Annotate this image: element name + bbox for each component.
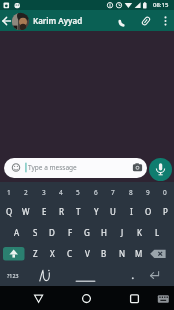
button[interactable]: N (112, 246, 132, 260)
staticText: X (50, 248, 55, 259)
button[interactable] (36, 268, 52, 283)
staticText: 08:15 (153, 1, 169, 9)
staticText: O (145, 206, 152, 217)
button[interactable]: P (155, 204, 174, 218)
staticText: C (67, 248, 73, 259)
staticText: 9 (146, 188, 150, 197)
staticText: W (22, 206, 30, 217)
button[interactable] (114, 12, 132, 30)
staticText: Q (6, 206, 13, 217)
button[interactable]: 1 (0, 185, 19, 199)
button[interactable] (28, 290, 50, 307)
staticText: E (42, 206, 47, 217)
staticText: G (84, 227, 90, 238)
staticText: I (130, 206, 133, 217)
staticText: A (14, 227, 20, 238)
staticText: 4 (59, 188, 63, 197)
button[interactable]: S (25, 225, 45, 239)
button[interactable]: G (77, 225, 97, 239)
button[interactable]: J (112, 225, 132, 239)
staticText: Karim Ayyad (33, 15, 83, 26)
button[interactable]: I (121, 204, 141, 218)
button[interactable]: A (7, 225, 27, 239)
staticText: J (121, 227, 124, 238)
button[interactable]: 9 (138, 185, 158, 199)
button[interactable]: 3 (34, 185, 54, 199)
button[interactable] (123, 290, 145, 307)
button[interactable]: 4 (51, 185, 71, 199)
button[interactable] (0, 10, 174, 31)
button[interactable]: 7 (103, 185, 123, 199)
button[interactable]: F (60, 225, 80, 239)
button[interactable]: R (51, 204, 71, 218)
button[interactable]: 5 (68, 185, 88, 199)
staticText: K (137, 227, 142, 238)
staticText: 7 (111, 188, 115, 197)
button[interactable]: W (16, 204, 36, 218)
button[interactable]: ?123 (3, 268, 23, 282)
button[interactable] (146, 268, 166, 283)
staticText: Z (33, 248, 38, 259)
button[interactable] (158, 12, 172, 30)
button[interactable]: Q (0, 204, 19, 218)
staticText: 6 (94, 188, 98, 197)
staticText: 3 (42, 188, 46, 197)
button[interactable] (3, 247, 25, 261)
staticText: 2 (24, 188, 28, 197)
button[interactable] (124, 268, 140, 283)
button[interactable] (0, 12, 13, 30)
staticText: Type a message (28, 163, 77, 172)
staticText: 8 (129, 188, 133, 197)
button[interactable] (75, 290, 97, 307)
button[interactable]: 2 (16, 185, 36, 199)
staticText: M (135, 248, 143, 259)
staticText: N (119, 248, 126, 259)
button[interactable]: E (34, 204, 54, 218)
button[interactable]: O (138, 204, 158, 218)
staticText: Y (94, 206, 99, 217)
button[interactable] (153, 290, 173, 307)
staticText: H (101, 227, 107, 238)
button[interactable]: M (129, 246, 149, 260)
button[interactable]: Karim Ayyad (33, 14, 103, 27)
button[interactable] (137, 12, 155, 30)
staticText: 1 (7, 188, 11, 197)
button[interactable]: 8 (121, 185, 141, 199)
button[interactable] (60, 268, 112, 283)
button[interactable]: T (68, 204, 88, 218)
button[interactable]: X (42, 246, 62, 260)
button[interactable]: H (94, 225, 114, 239)
button[interactable] (149, 158, 172, 181)
button[interactable] (150, 247, 168, 261)
button[interactable]: V (77, 246, 97, 260)
button[interactable]: K (129, 225, 149, 239)
button[interactable]: Z (25, 246, 45, 260)
staticText: F (68, 227, 73, 238)
button[interactable] (4, 158, 147, 178)
staticText: ?123 (7, 272, 19, 279)
staticText: S (33, 227, 38, 238)
button[interactable]: 0 (155, 185, 174, 199)
staticText: B (101, 248, 107, 259)
staticText: V (85, 248, 90, 259)
staticText: D (49, 227, 55, 238)
staticText: U (110, 206, 116, 217)
staticText: 0 (163, 188, 167, 197)
button[interactable]: C (60, 246, 80, 260)
button[interactable]: L (147, 225, 167, 239)
button[interactable]: D (42, 225, 62, 239)
staticText: 5 (76, 188, 80, 197)
button[interactable]: B (94, 246, 114, 260)
staticText: L (155, 227, 160, 238)
button[interactable]: Y (86, 204, 106, 218)
staticText: T (76, 206, 81, 217)
button[interactable]: 6 (86, 185, 106, 199)
button[interactable]: U (103, 204, 123, 218)
staticText: R (59, 206, 64, 217)
staticText: P (163, 206, 168, 217)
